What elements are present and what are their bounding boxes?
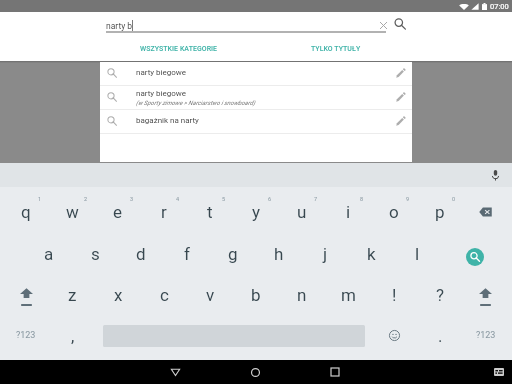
button[interactable]: ?123: [463, 315, 509, 356]
button[interactable]: v: [187, 274, 233, 315]
staticText: .: [438, 326, 443, 346]
staticText: a: [44, 244, 54, 264]
staticText: 3: [130, 196, 134, 202]
staticText: 07:00: [490, 2, 509, 11]
staticText: m: [341, 285, 356, 305]
button[interactable]: Back: [163, 360, 187, 384]
staticText: bagażnik na narty: [136, 116, 199, 125]
staticText: z: [68, 285, 77, 305]
staticText: k: [367, 244, 376, 264]
staticText: 8: [360, 196, 364, 202]
button[interactable]: Edit suggestion: [388, 86, 412, 109]
button[interactable]: Recent apps: [323, 360, 347, 384]
staticText: s: [91, 244, 100, 264]
staticText: ?123: [16, 330, 36, 341]
button[interactable]: !: [371, 274, 417, 315]
button[interactable]: Shift: [463, 274, 512, 315]
button[interactable]: Voice input: [486, 166, 504, 184]
staticText: 1: [38, 196, 42, 202]
staticText: 9: [406, 196, 410, 202]
button[interactable]: TYLKO TYTUŁY: [258, 39, 414, 59]
staticText: 6: [268, 196, 272, 202]
staticText: 0: [452, 196, 456, 202]
button[interactable]: 9: [371, 191, 417, 233]
button[interactable]: narty biegowe: [100, 86, 412, 110]
staticText: narty b: [106, 21, 133, 31]
staticText: o: [389, 202, 399, 222]
staticText: d: [136, 244, 146, 264]
staticText: q: [21, 202, 31, 222]
staticText: 7: [314, 196, 318, 202]
staticText: 2: [84, 196, 88, 202]
button[interactable]: b: [233, 274, 279, 315]
button[interactable]: 1: [3, 191, 49, 233]
staticText: h: [274, 244, 284, 264]
button[interactable]: 4: [141, 191, 187, 233]
button[interactable]: s: [72, 233, 118, 274]
staticText: 5: [222, 196, 226, 202]
button[interactable]: bagażnik na narty: [100, 110, 412, 134]
button[interactable]: m: [325, 274, 371, 315]
button[interactable]: Switch keyboard: [487, 360, 511, 384]
staticText: r: [161, 202, 167, 222]
button[interactable]: g: [210, 233, 256, 274]
staticText: t: [207, 202, 213, 222]
button[interactable]: Search: [391, 15, 409, 33]
staticText: ,: [71, 326, 75, 346]
button[interactable]: 7: [279, 191, 325, 233]
staticText: p: [435, 202, 445, 222]
button[interactable]: Space: [95, 315, 371, 356]
button[interactable]: 2: [49, 191, 95, 233]
staticText: ?: [436, 285, 445, 305]
button[interactable]: d: [118, 233, 164, 274]
button[interactable]: Search: [466, 248, 484, 266]
button[interactable]: a: [26, 233, 72, 274]
staticText: WSZYSTKIE KATEGORIE: [140, 45, 218, 53]
staticText: i: [346, 202, 351, 222]
button[interactable]: Edit suggestion: [388, 62, 412, 85]
button[interactable]: Clear query: [375, 17, 391, 33]
button[interactable]: Backspace: [463, 191, 512, 233]
button[interactable]: f: [164, 233, 210, 274]
staticText: v: [206, 285, 215, 305]
staticText: u: [297, 202, 307, 222]
button[interactable]: narty biegowe: [100, 62, 412, 86]
button[interactable]: 3: [95, 191, 141, 233]
button[interactable]: ?: [417, 274, 463, 315]
staticText: e: [113, 202, 123, 222]
button[interactable]: Edit suggestion: [388, 110, 412, 133]
button[interactable]: ?123: [3, 315, 49, 356]
staticText: y: [252, 202, 261, 222]
button[interactable]: h: [256, 233, 302, 274]
staticText: n: [297, 285, 307, 305]
button[interactable]: k: [348, 233, 394, 274]
button[interactable]: ,: [49, 315, 95, 356]
button[interactable]: Emoji: [371, 315, 417, 356]
button[interactable]: 6: [233, 191, 279, 233]
staticText: narty biegowe: [136, 68, 187, 77]
staticText: !: [392, 285, 397, 305]
staticText: TYLKO TYTUŁY: [311, 45, 361, 53]
button[interactable]: x: [95, 274, 141, 315]
button[interactable]: .: [417, 315, 463, 356]
staticText: w: [66, 202, 79, 222]
button[interactable]: 5: [187, 191, 233, 233]
button[interactable]: 0: [417, 191, 463, 233]
button[interactable]: 8: [325, 191, 371, 233]
staticText: (w Sporty zimowe > Narciarstwo i snowboa…: [136, 99, 256, 106]
button[interactable]: Shift: [3, 274, 49, 315]
button[interactable]: WSZYSTKIE KATEGORIE: [100, 39, 258, 59]
staticText: f: [184, 244, 190, 264]
staticText: j: [323, 244, 328, 264]
button[interactable]: l: [394, 233, 440, 274]
button[interactable]: Home: [243, 360, 267, 384]
staticText: ?123: [476, 330, 496, 341]
button[interactable]: n: [279, 274, 325, 315]
button[interactable]: z: [49, 274, 95, 315]
button[interactable]: c: [141, 274, 187, 315]
staticText: c: [160, 285, 169, 305]
button[interactable]: j: [302, 233, 348, 274]
staticText: 4: [176, 196, 180, 202]
staticText: l: [415, 244, 420, 264]
staticText: g: [228, 244, 238, 264]
